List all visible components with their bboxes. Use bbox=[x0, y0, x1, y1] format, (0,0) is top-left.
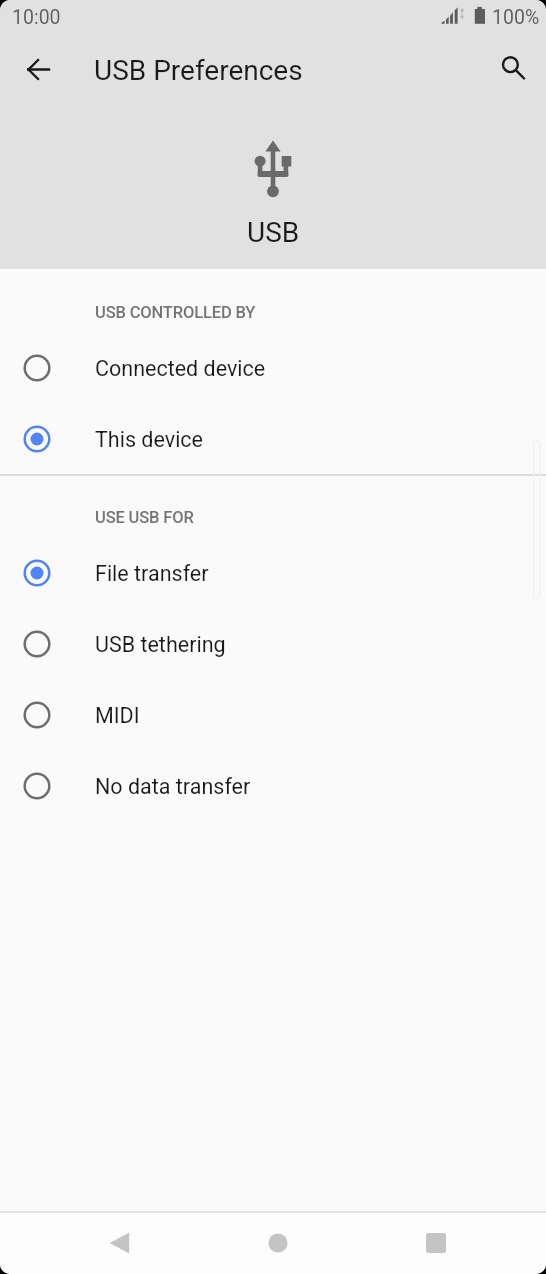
button[interactable]: MIDI bbox=[0, 679, 546, 750]
button[interactable]: No data transfer bbox=[0, 750, 546, 821]
staticText: 100% bbox=[492, 6, 540, 29]
staticText: USB Preferences bbox=[94, 54, 303, 87]
staticText: File transfer bbox=[95, 561, 209, 586]
button[interactable]: Recents bbox=[406, 1212, 466, 1274]
staticText: MIDI bbox=[95, 703, 140, 728]
button[interactable]: This device bbox=[0, 403, 546, 474]
button[interactable]: USB tethering bbox=[0, 608, 546, 679]
button[interactable]: Back bbox=[14, 45, 62, 93]
staticText: Connected device bbox=[95, 356, 266, 381]
staticText: USE USB FOR bbox=[95, 508, 194, 527]
button[interactable]: Connected device bbox=[0, 332, 546, 403]
button[interactable]: Back bbox=[89, 1212, 149, 1274]
staticText: 10:00 bbox=[12, 6, 61, 29]
staticText: USB bbox=[247, 216, 300, 249]
staticText: USB tethering bbox=[95, 632, 226, 657]
button[interactable]: Home bbox=[248, 1212, 308, 1274]
button[interactable]: File transfer bbox=[0, 537, 546, 608]
staticText: This device bbox=[95, 427, 204, 452]
staticText: No data transfer bbox=[95, 774, 251, 799]
staticText: USB CONTROLLED BY bbox=[95, 303, 256, 322]
button[interactable]: Search bbox=[488, 42, 536, 90]
